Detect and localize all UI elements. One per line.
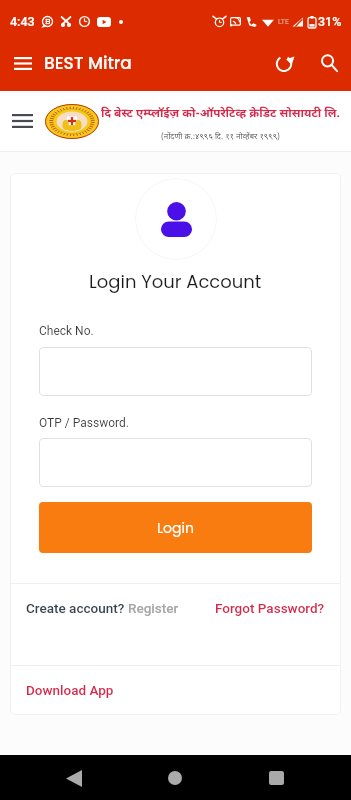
button[interactable]: Refresh	[270, 49, 298, 77]
button[interactable]: Home	[153, 756, 197, 800]
staticText: 31%	[318, 14, 342, 29]
staticText: Create account?	[26, 600, 128, 616]
button[interactable]	[39, 347, 312, 396]
staticText: LTE	[278, 18, 289, 26]
button[interactable]	[39, 438, 312, 487]
staticText: Register	[128, 600, 179, 616]
button[interactable]: Menu	[13, 51, 33, 75]
button[interactable]: Download App	[26, 682, 114, 698]
staticText: Login Your Account	[89, 269, 262, 294]
staticText: (नोंदणी क्र.:४९९६ दि. ११ नोव्हेंबर १९९९)	[161, 130, 280, 141]
button[interactable]: Login	[39, 502, 312, 553]
staticText: OTP / Password.	[39, 416, 129, 430]
button[interactable]: Create account?	[26, 600, 179, 616]
button[interactable]: Open navigation	[12, 109, 34, 133]
button[interactable]: Search	[315, 49, 343, 77]
staticText: Login	[157, 518, 194, 538]
button[interactable]: Recent apps	[254, 756, 298, 800]
button[interactable]: Forgot Password?	[215, 600, 325, 616]
staticText: BEST Mitra	[44, 51, 132, 75]
button[interactable]: Back	[52, 756, 96, 800]
staticText: दि बेस्ट एम्प्लॉईज़ को-ऑपरेटिव्ह क्रेडिट…	[101, 104, 340, 120]
staticText: Check No.	[39, 324, 94, 338]
staticText: 4:43	[10, 14, 35, 29]
